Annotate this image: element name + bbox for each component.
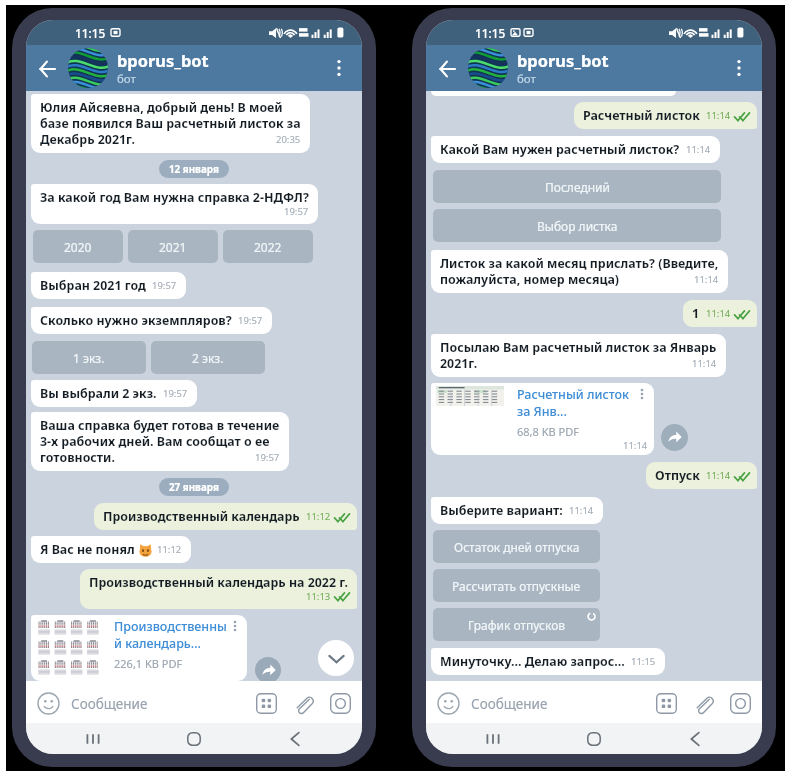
staticText: 1 экз. (73, 350, 105, 366)
button[interactable]: 12 января (159, 160, 229, 178)
staticText: bporus_bot (517, 49, 609, 71)
button[interactable]: Выберите вариант: (431, 497, 603, 524)
button[interactable]: Scroll to bottom (318, 640, 354, 676)
button[interactable]: Forward (255, 657, 281, 683)
button[interactable]: Attach (693, 693, 714, 714)
staticText: Я Вас не понял (40, 541, 135, 558)
button[interactable]: Recents (43, 723, 143, 754)
button[interactable]: Рассчитать отпускные (433, 569, 600, 602)
button[interactable]: Отпуск (646, 462, 757, 489)
staticText: Сколько нужно экземпляров? (40, 312, 232, 329)
staticText: Сообщение (471, 695, 548, 713)
staticText: Производственны й календарь... (114, 618, 227, 652)
button[interactable]: Вы выбрали 2 экз. (31, 380, 197, 407)
staticText: 11:14 (706, 109, 731, 122)
button[interactable]: Emoji (437, 692, 460, 715)
staticText: 11:15 (631, 655, 656, 668)
staticText: 19:57 (163, 387, 188, 400)
button[interactable]: Back (432, 53, 463, 84)
button[interactable]: Юлия Айсяевна, добрый день! В моей базе … (31, 94, 310, 153)
button[interactable]: Bot commands (656, 693, 677, 714)
button[interactable]: More options (727, 56, 751, 80)
button[interactable]: 1 экз. (32, 341, 146, 374)
button[interactable]: 2 экз. (151, 341, 265, 374)
button[interactable]: Какой Вам нужен расчетный листок? (431, 136, 720, 163)
staticText: bporus_bot (117, 49, 209, 71)
button[interactable]: Home (543, 723, 644, 754)
staticText: 11:14 (686, 143, 711, 156)
staticText: Какой Вам нужен расчетный листок? (440, 141, 680, 158)
button[interactable]: 27 января (159, 478, 229, 496)
staticText: 11:13 (306, 590, 331, 603)
button[interactable]: Home (143, 723, 244, 754)
staticText: 2021 (159, 239, 187, 255)
staticText: 11:15 (75, 25, 106, 41)
staticText: Последний (545, 179, 610, 195)
staticText: Производственный календарь на 2022 г. (89, 574, 349, 591)
button[interactable]: 2021 (128, 230, 218, 263)
staticText: 19:57 (284, 205, 309, 218)
button[interactable]: Расчетный листок за Янв... (431, 383, 654, 455)
button[interactable]: Расчетный листок (574, 102, 757, 129)
staticText: Листок за какой месяц прислать? (Введите… (440, 255, 719, 288)
button[interactable]: Camera (330, 693, 351, 714)
staticText: Сообщение (71, 695, 148, 713)
staticText: Ваша справка будет готова в течение 3-х … (40, 417, 280, 466)
staticText: 19:57 (152, 279, 177, 292)
button[interactable]: 2022 (223, 230, 313, 263)
button[interactable]: Производственны й календарь... (31, 615, 247, 681)
button[interactable]: Листок за какой месяц прислать? (Введите… (431, 250, 728, 293)
staticText: бот (117, 71, 136, 87)
staticText: 19:57 (238, 314, 263, 327)
staticText: 11:12 (306, 510, 331, 523)
staticText: 68,8 KB PDF (517, 424, 579, 439)
button[interactable]: Минуточку... Делаю запрос... (431, 648, 665, 675)
staticText: 11:14 (623, 439, 648, 452)
staticText: Отпуск (655, 467, 700, 484)
staticText: За какой год Вам нужна справка 2-НДФЛ? (40, 189, 309, 206)
staticText: 11:14 (706, 469, 731, 482)
button[interactable]: Производственный календарь (94, 503, 357, 530)
staticText: Расчетный листок за Янв... (517, 386, 629, 420)
staticText: Юлия Айсяевна, добрый день! В моей базе … (40, 99, 301, 148)
staticText: Расчетный листок (583, 107, 700, 124)
staticText: 226,1 KB PDF (114, 656, 183, 671)
button[interactable]: Attach (293, 693, 314, 714)
staticText: 11:14 (694, 273, 719, 286)
button[interactable]: Последний (433, 170, 721, 203)
button[interactable]: График отпусков (433, 608, 600, 641)
staticText: Выбран 2021 год (40, 277, 146, 294)
staticText: 2 экз. (192, 350, 224, 366)
button[interactable]: Back (244, 723, 345, 754)
button[interactable]: Bot commands (256, 693, 277, 714)
button[interactable]: Camera (730, 693, 751, 714)
staticText: 11:14 (569, 504, 594, 517)
button[interactable]: За какой год Вам нужна справка 2-НДФЛ? (31, 184, 318, 224)
button[interactable]: Производственный календарь на 2022 г. (80, 569, 357, 609)
button[interactable]: 2020 (33, 230, 123, 263)
staticText: Производственный календарь (103, 508, 300, 525)
staticText: 2022 (254, 239, 282, 255)
button[interactable]: Посылаю Вам расчетный листок за Январь 2… (431, 334, 726, 377)
staticText: 11:14 (706, 307, 731, 320)
button[interactable]: Выбор листка (433, 209, 721, 242)
button[interactable]: Остаток дней отпуска (433, 530, 600, 563)
button[interactable]: Ваша справка будет готова в течение 3-х … (31, 412, 289, 471)
button[interactable]: Back (644, 723, 745, 754)
button[interactable]: More options (327, 56, 351, 80)
button[interactable]: Сколько нужно экземпляров? (31, 307, 272, 334)
staticText: бот (517, 71, 536, 87)
staticText: Минуточку... Делаю запрос... (440, 653, 625, 670)
staticText: Посылаю Вам расчетный листок за Январь 2… (440, 339, 717, 372)
staticText: 2020 (64, 239, 92, 255)
button[interactable]: Emoji (37, 692, 60, 715)
staticText: 20:35 (276, 133, 301, 146)
button[interactable]: Recents (443, 723, 543, 754)
button[interactable]: Forward (661, 424, 688, 451)
button[interactable]: Я Вас не понял (31, 536, 191, 563)
staticText: 19:57 (255, 451, 280, 464)
button[interactable]: Back (32, 53, 63, 84)
staticText: 12 января (169, 163, 219, 176)
button[interactable]: Выбран 2021 год (31, 272, 186, 299)
button[interactable]: 1 (683, 300, 757, 327)
